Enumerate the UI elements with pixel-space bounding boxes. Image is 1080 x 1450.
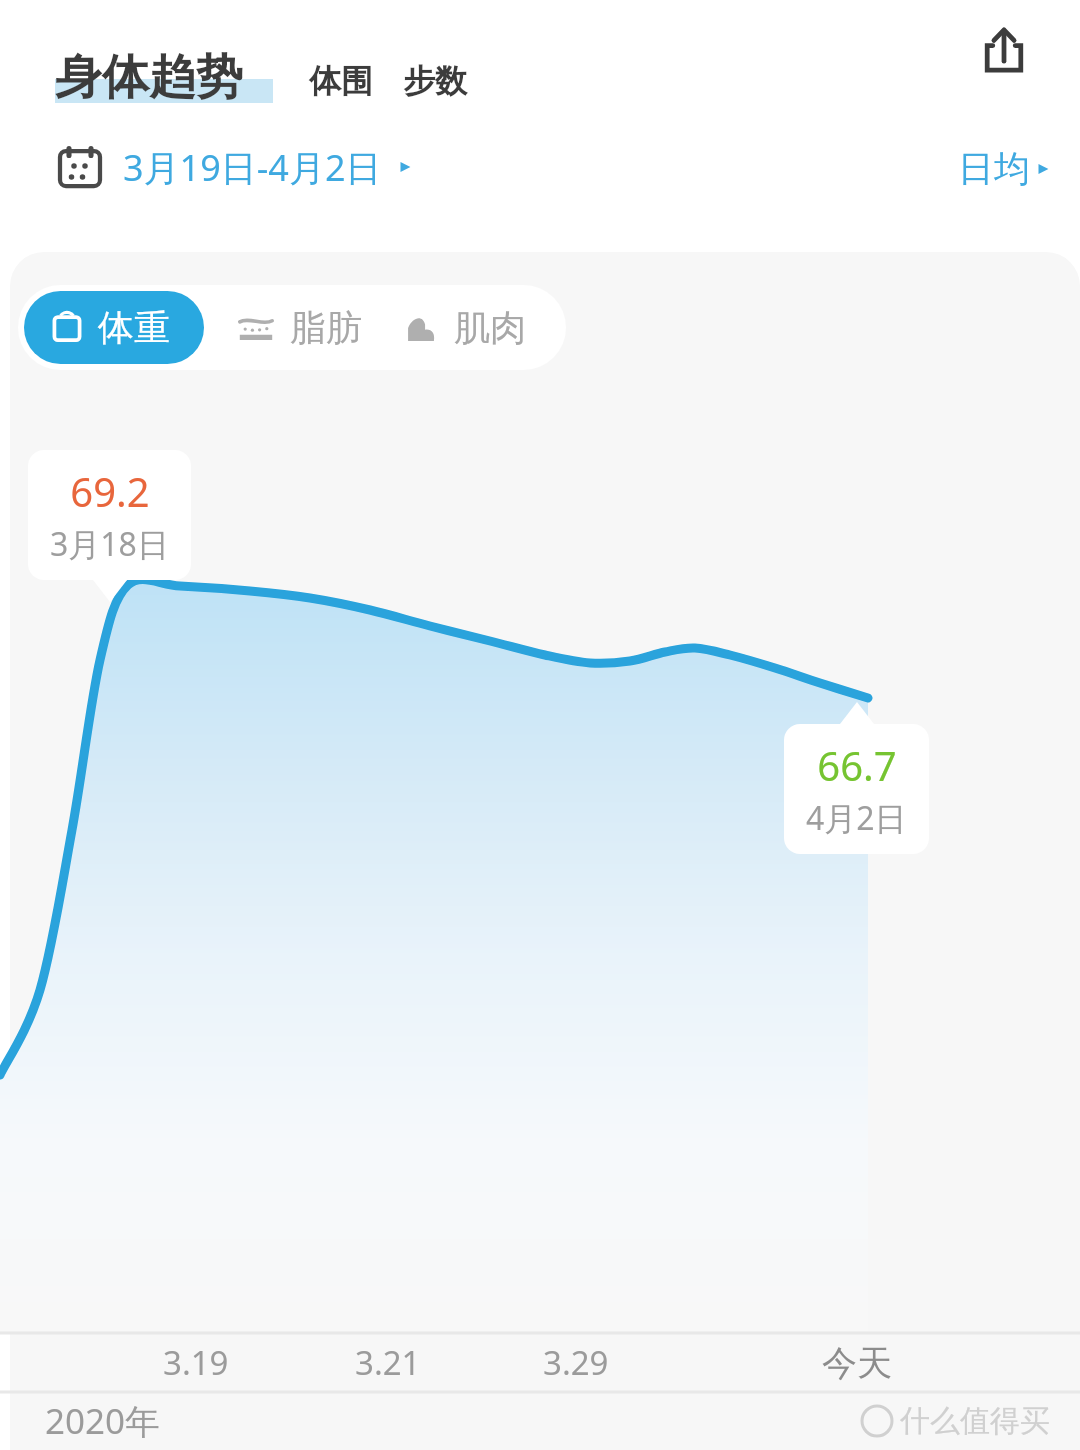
staticText: 身体趋势	[55, 48, 243, 107]
staticText: 69.2	[70, 464, 150, 518]
staticText: 3.19	[163, 1340, 229, 1385]
staticText: 今天	[822, 1341, 892, 1385]
staticText: 66.7	[817, 738, 897, 792]
staticText: 肌肉	[454, 305, 526, 350]
button[interactable]: 69.2	[28, 450, 191, 580]
button[interactable]: 步数	[403, 61, 467, 107]
button[interactable]: 体重	[24, 291, 204, 364]
staticText: 3.29	[543, 1340, 609, 1385]
staticText: 日均	[958, 146, 1030, 191]
button[interactable]: 66.7	[784, 724, 929, 854]
button[interactable]: 3月19日-4月2日	[55, 142, 414, 192]
button[interactable]: Share	[968, 14, 1040, 86]
staticText: 3月18日	[50, 522, 169, 566]
button[interactable]: 肌肉	[396, 291, 560, 364]
button[interactable]: 日均	[958, 146, 1052, 191]
staticText: 体重	[98, 305, 170, 350]
button[interactable]: 脂肪	[230, 291, 370, 364]
staticText: 4月2日	[806, 796, 907, 840]
staticText: 脂肪	[290, 305, 362, 350]
staticText: 什么值得买	[900, 1402, 1050, 1440]
staticText: 3月19日-4月2日	[123, 143, 382, 192]
staticText: 2020年	[45, 1397, 161, 1445]
button[interactable]: 身体趋势	[55, 48, 273, 107]
button[interactable]: 体围	[309, 61, 373, 107]
staticText: 3.21	[355, 1340, 421, 1385]
